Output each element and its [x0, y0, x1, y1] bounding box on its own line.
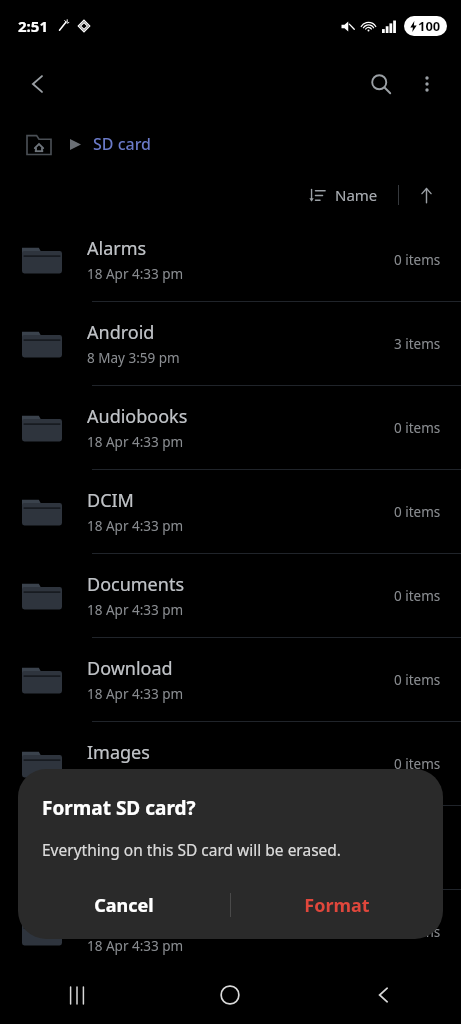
- button[interactable]: Images: [0, 722, 461, 806]
- staticText: 18 Apr 4:33 pm: [87, 601, 184, 619]
- button[interactable]: Audiobooks: [0, 386, 461, 470]
- button[interactable]: SD card: [93, 133, 152, 155]
- staticText: 18 Apr 4:33 pm: [87, 685, 184, 703]
- staticText: Name: [335, 185, 378, 205]
- staticText: Format SD card?: [42, 795, 196, 821]
- staticText: 18 Apr 4:33 pm: [87, 265, 184, 283]
- staticText: 0 items: [394, 251, 441, 269]
- staticText: 18 Apr 4:33 pm: [87, 517, 184, 535]
- staticText: 2:51: [18, 16, 48, 36]
- button[interactable]: Home: [153, 966, 307, 1024]
- staticText: Android: [87, 320, 155, 345]
- staticText: Audiobooks: [87, 404, 188, 429]
- button[interactable]: Android: [0, 302, 461, 386]
- staticText: 18 Apr 4:33 pm: [87, 433, 184, 451]
- staticText: Cancel: [94, 893, 154, 918]
- staticText: DCIM: [87, 488, 134, 513]
- staticText: Download: [87, 656, 173, 681]
- staticText: Format: [304, 893, 370, 918]
- button[interactable]: Music: [0, 890, 461, 974]
- staticText: 0 items: [394, 923, 441, 941]
- button[interactable]: Cancel: [18, 880, 230, 930]
- staticText: 0 items: [394, 671, 441, 689]
- staticText: 0 items: [394, 587, 441, 605]
- button[interactable]: Recents: [0, 966, 153, 1024]
- button[interactable]: More options: [405, 62, 449, 106]
- staticText: 100: [418, 17, 441, 35]
- staticText: Alarms: [87, 236, 147, 261]
- staticText: 8 May 3:59 pm: [87, 349, 180, 367]
- button[interactable]: Home folder: [22, 127, 56, 161]
- button[interactable]: Format: [231, 880, 443, 930]
- button[interactable]: DCIM: [0, 470, 461, 554]
- staticText: Documents: [87, 572, 185, 597]
- staticText: Everything on this SD card will be erase…: [42, 839, 342, 860]
- button[interactable]: Notifications: [0, 974, 461, 1024]
- staticText: Movies: [87, 824, 147, 849]
- button[interactable]: Documents: [0, 554, 461, 638]
- staticText: 0 items: [394, 503, 441, 521]
- button[interactable]: Alarms: [0, 218, 461, 302]
- button[interactable]: Download: [0, 638, 461, 722]
- staticText: Music: [87, 908, 137, 933]
- staticText: Images: [87, 740, 150, 765]
- staticText: 18 Apr 4:33 pm: [87, 853, 184, 871]
- staticText: SD card: [93, 133, 152, 155]
- staticText: 18 Apr 4:33 pm: [87, 937, 184, 955]
- button[interactable]: Movies: [0, 806, 461, 890]
- button[interactable]: Search: [357, 60, 405, 108]
- button[interactable]: Name: [303, 181, 384, 209]
- staticText: 0 items: [394, 755, 441, 773]
- staticText: 0 items: [394, 419, 441, 437]
- button[interactable]: Sort ascending: [409, 178, 443, 212]
- button[interactable]: Back: [14, 60, 62, 108]
- button[interactable]: Back: [307, 966, 461, 1024]
- staticText: 3 items: [394, 335, 441, 353]
